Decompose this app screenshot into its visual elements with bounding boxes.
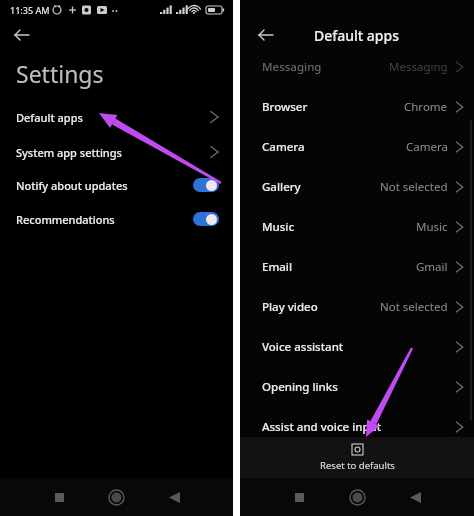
button[interactable]: Voice assistant [240, 327, 474, 367]
staticText: Music [262, 219, 295, 235]
staticText: Default apps [314, 26, 400, 45]
button[interactable]: Opening links [240, 367, 474, 407]
staticText: Settings [16, 58, 104, 89]
staticText: Not selected [380, 299, 448, 315]
staticText: Chrome [404, 99, 448, 115]
staticText: Opening links [262, 379, 338, 395]
button[interactable]: Recent apps [286, 484, 312, 510]
button[interactable]: Gallery [240, 167, 474, 207]
button[interactable]: Reset to defaults [240, 437, 474, 478]
button[interactable]: Messaging [240, 47, 474, 87]
staticText: Gmail [416, 259, 448, 275]
button[interactable]: Camera [240, 127, 474, 167]
staticText: Assist and voice input [262, 419, 382, 435]
button[interactable]: Home [103, 484, 129, 510]
staticText: Notify about updates [16, 178, 128, 193]
button[interactable]: Assist and voice input [240, 407, 474, 447]
button[interactable]: Music [240, 207, 474, 247]
staticText: Browser [262, 99, 308, 115]
button[interactable]: Recommendations [0, 202, 233, 236]
staticText: Reset to defaults [320, 459, 395, 472]
button[interactable]: Recent apps [46, 484, 72, 510]
button[interactable]: Back [402, 484, 428, 510]
button[interactable]: Browser [240, 87, 474, 127]
button[interactable]: Back [9, 22, 35, 48]
staticText: Not selected [380, 179, 448, 195]
button[interactable]: Back [253, 22, 279, 48]
staticText: Default apps [314, 26, 400, 45]
staticText: Camera [262, 139, 305, 155]
button[interactable]: System app settings [0, 135, 233, 169]
staticText: Email [262, 259, 293, 275]
staticText: Default apps [16, 110, 83, 125]
staticText: 11:35 AM [10, 4, 50, 16]
staticText: System app settings [16, 145, 122, 160]
button[interactable]: Default apps [0, 100, 233, 134]
button[interactable]: Play video [240, 287, 474, 327]
button[interactable]: Home [344, 484, 370, 510]
staticText: Gallery [262, 179, 301, 195]
button[interactable]: Back [253, 22, 279, 48]
staticText: Camera [406, 139, 448, 155]
staticText: Messaging [389, 59, 448, 75]
staticText: Play video [262, 299, 318, 315]
staticText: Music [416, 219, 448, 235]
button[interactable]: Notify about updates [0, 168, 233, 202]
staticText: Voice assistant [262, 339, 344, 355]
button[interactable]: Email [240, 247, 474, 287]
staticText: Recommendations [16, 212, 115, 227]
button[interactable]: Back [161, 484, 187, 510]
staticText: Messaging [262, 59, 322, 75]
